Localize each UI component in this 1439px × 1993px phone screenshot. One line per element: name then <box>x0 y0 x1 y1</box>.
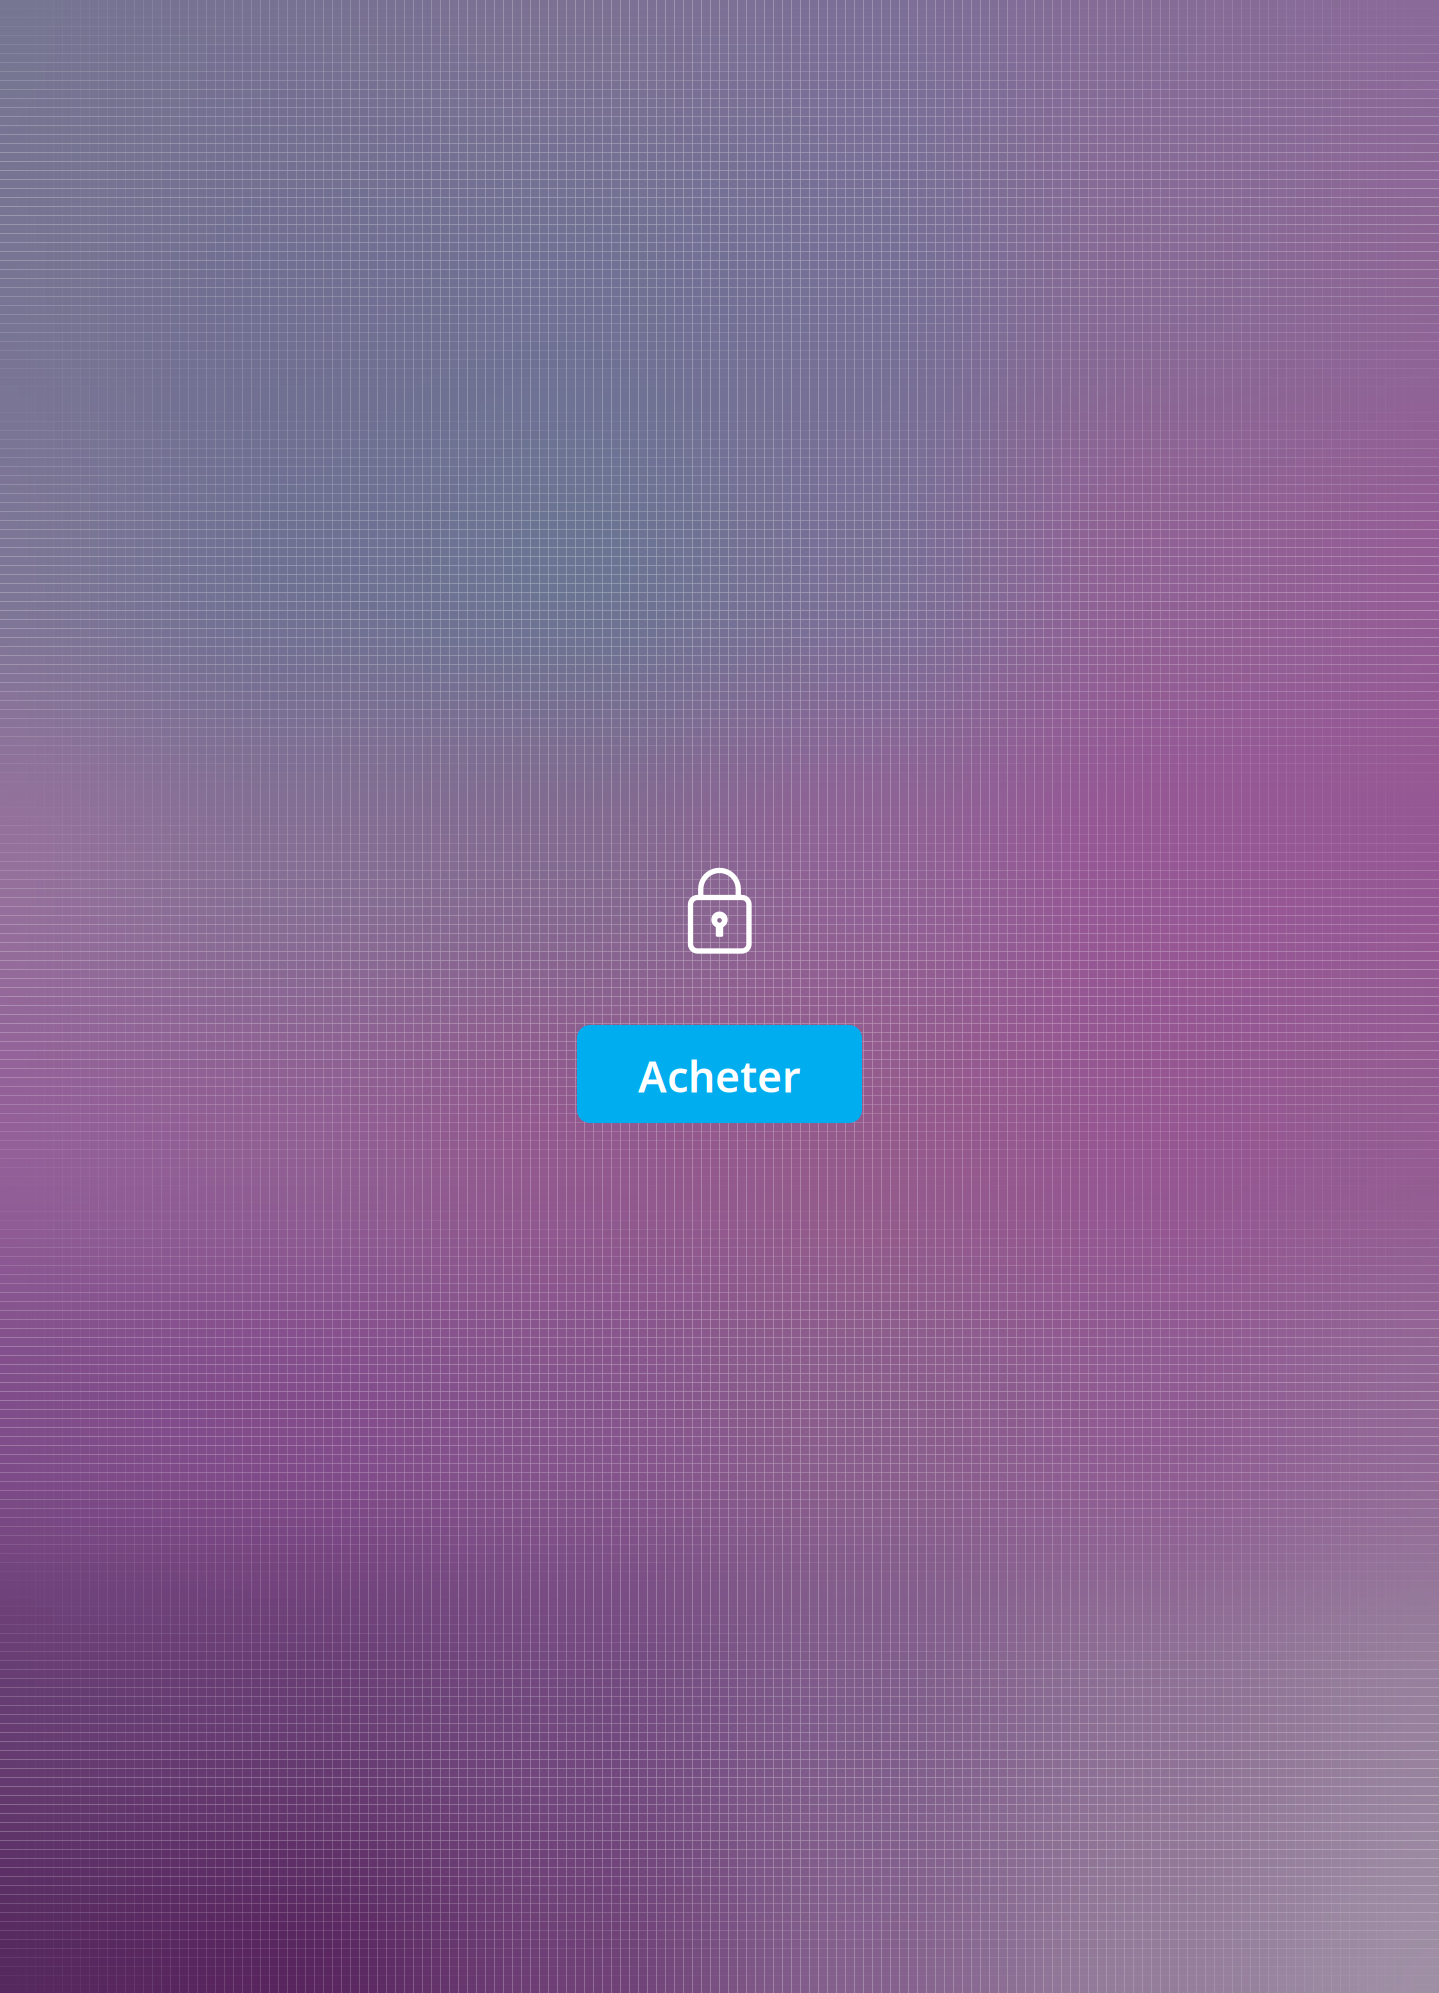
button[interactable]: Acheter <box>577 1025 862 1123</box>
staticText: Acheter <box>638 1048 801 1104</box>
